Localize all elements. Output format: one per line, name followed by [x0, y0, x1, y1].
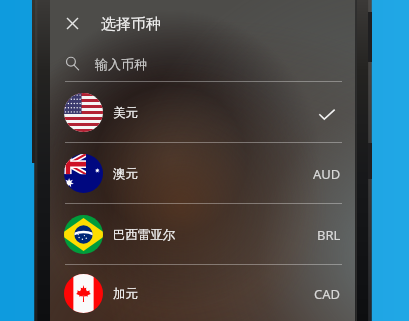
staticText: 美元 [113, 105, 138, 121]
button[interactable]: Close [50, 0, 95, 46]
staticText: AUD [313, 165, 341, 183]
button[interactable]: 巴西雷亚尔 [50, 204, 355, 264]
staticText: 巴西雷亚尔 [113, 227, 176, 243]
button[interactable]: 加元 [50, 265, 355, 321]
staticText: 输入币种 [95, 56, 147, 72]
staticText: 澳元 [113, 166, 138, 182]
button[interactable]: 美元 [50, 82, 355, 142]
staticText: CAD [314, 285, 341, 303]
staticText: 加元 [113, 286, 138, 302]
staticText: BRL [317, 226, 341, 244]
staticText: 选择币种 [101, 15, 161, 34]
button[interactable]: 澳元 [50, 143, 355, 203]
